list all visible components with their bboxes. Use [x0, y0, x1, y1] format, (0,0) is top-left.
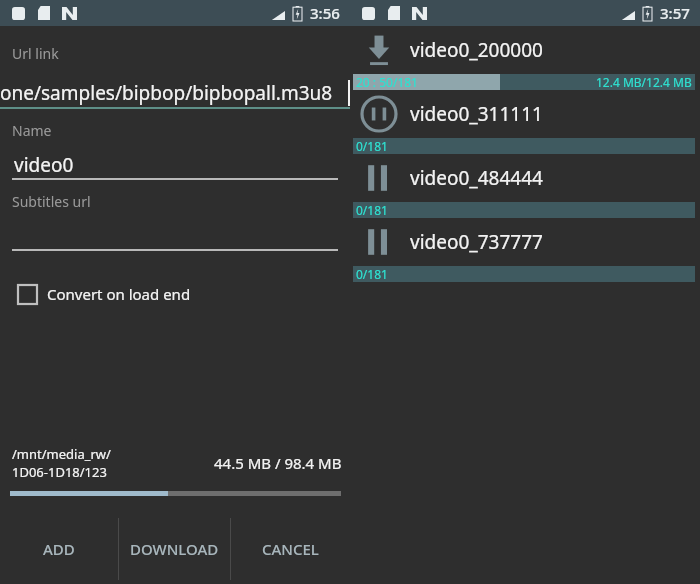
staticText: 3:57 — [660, 3, 690, 23]
button[interactable]: ADD — [0, 518, 118, 580]
button[interactable]: Pause — [350, 90, 700, 154]
staticText: 0/181 — [356, 266, 388, 282]
other: Pause — [356, 155, 402, 201]
staticText: 3:56 — [310, 3, 340, 23]
staticText: CANCEL — [262, 539, 319, 559]
staticText: Convert on load end — [47, 284, 191, 304]
other: Pause — [356, 219, 402, 265]
other: Downloading — [356, 27, 402, 73]
button[interactable]: Pause — [350, 154, 700, 218]
button[interactable]: Pause — [350, 218, 700, 282]
staticText: /mnt/media_rw/ — [12, 445, 111, 463]
staticText: Subtitles url — [12, 192, 91, 211]
staticText: video0_737777 — [410, 229, 543, 255]
staticText: 0/181 — [356, 202, 388, 218]
staticText: video0_484444 — [410, 165, 543, 191]
staticText: DOWNLOAD — [130, 539, 219, 559]
staticText: Name — [12, 121, 52, 140]
staticText: one/samples/bipbop/bipbopall.m3u8 — [0, 80, 333, 106]
staticText: 0/181 — [356, 138, 388, 154]
other: Pause — [356, 91, 402, 137]
button[interactable]: CANCEL — [231, 518, 350, 580]
staticText: ADD — [43, 539, 75, 559]
button[interactable]: DOWNLOAD — [119, 518, 230, 580]
button[interactable]: Convert on load end — [0, 277, 350, 311]
staticText: 12.4 MB/12.4 MB — [596, 74, 692, 90]
staticText: 44.5 MB / 98.4 MB — [214, 453, 342, 473]
button[interactable]: Downloading — [350, 26, 700, 90]
staticText: 1D06-1D18/123 — [12, 463, 107, 481]
staticText: video0 — [14, 152, 74, 178]
staticText: 20 : 50/181 — [356, 74, 418, 90]
staticText: video0_200000 — [410, 37, 543, 63]
staticText: Url link — [12, 44, 59, 63]
staticText: video0_311111 — [410, 101, 543, 127]
